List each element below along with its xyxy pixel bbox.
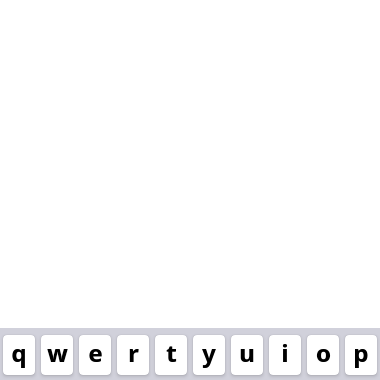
button[interactable]: e — [79, 335, 111, 375]
button[interactable]: w — [41, 335, 73, 375]
staticText: i — [281, 336, 289, 369]
staticText: e — [88, 336, 103, 369]
staticText: t — [166, 336, 177, 369]
button[interactable]: u — [231, 335, 263, 375]
staticText: o — [316, 336, 331, 369]
staticText: r — [128, 336, 139, 369]
staticText: w — [47, 336, 68, 369]
button[interactable]: i — [269, 335, 301, 375]
staticText: p — [353, 336, 369, 369]
button[interactable]: t — [155, 335, 187, 375]
staticText: q — [11, 336, 27, 369]
button[interactable]: r — [117, 335, 149, 375]
button[interactable]: q — [3, 335, 35, 375]
button[interactable]: y — [193, 335, 225, 375]
button[interactable]: p — [345, 335, 377, 375]
button[interactable]: o — [307, 335, 339, 375]
staticText: y — [202, 336, 216, 369]
staticText: u — [239, 336, 255, 369]
